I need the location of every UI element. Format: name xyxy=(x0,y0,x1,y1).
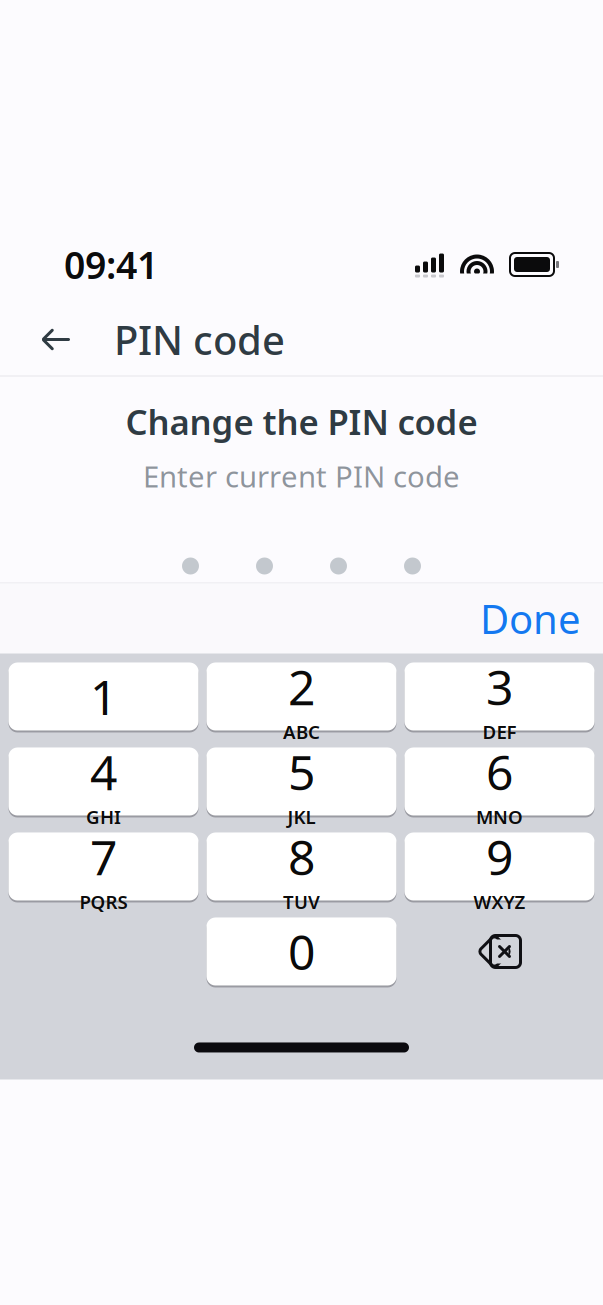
staticText: Done xyxy=(480,592,581,645)
staticText: TUV xyxy=(283,889,320,914)
staticText: Enter current PIN code xyxy=(143,456,460,495)
staticText: 2 xyxy=(288,655,315,718)
staticText: 3 xyxy=(486,655,513,718)
button[interactable]: 3 xyxy=(404,661,594,731)
staticText: 5 xyxy=(288,740,315,803)
button[interactable]: 4 xyxy=(8,746,198,816)
staticText: DEF xyxy=(482,719,516,744)
button[interactable]: Back xyxy=(28,311,84,367)
button[interactable]: 6 xyxy=(404,746,594,816)
staticText: 9 xyxy=(486,825,513,888)
button[interactable]: 2 xyxy=(206,661,396,731)
staticText: WXYZ xyxy=(473,889,525,914)
staticText: GHI xyxy=(86,804,121,829)
staticText: 4 xyxy=(90,740,117,803)
button[interactable]: 8 xyxy=(206,831,396,901)
staticText: 7 xyxy=(90,825,117,888)
button[interactable]: 0 xyxy=(206,916,396,986)
button[interactable]: 5 xyxy=(206,746,396,816)
staticText: 8 xyxy=(288,825,315,888)
button[interactable]: 1 xyxy=(8,661,198,731)
staticText: 09:41 xyxy=(64,240,158,289)
staticText: MNO xyxy=(476,804,523,829)
staticText: 0 xyxy=(288,920,315,983)
button[interactable]: 7 xyxy=(8,831,198,901)
staticText: 6 xyxy=(486,740,513,803)
staticText: Change the PIN code xyxy=(125,398,477,444)
staticText: JKL xyxy=(287,804,315,829)
button[interactable]: 9 xyxy=(404,831,594,901)
button[interactable]: Done xyxy=(458,578,603,659)
button[interactable]: Delete xyxy=(404,917,594,985)
staticText: ABC xyxy=(283,719,320,744)
staticText: PIN code xyxy=(114,313,285,366)
staticText: 1 xyxy=(90,665,117,728)
staticText: PQRS xyxy=(79,889,127,914)
